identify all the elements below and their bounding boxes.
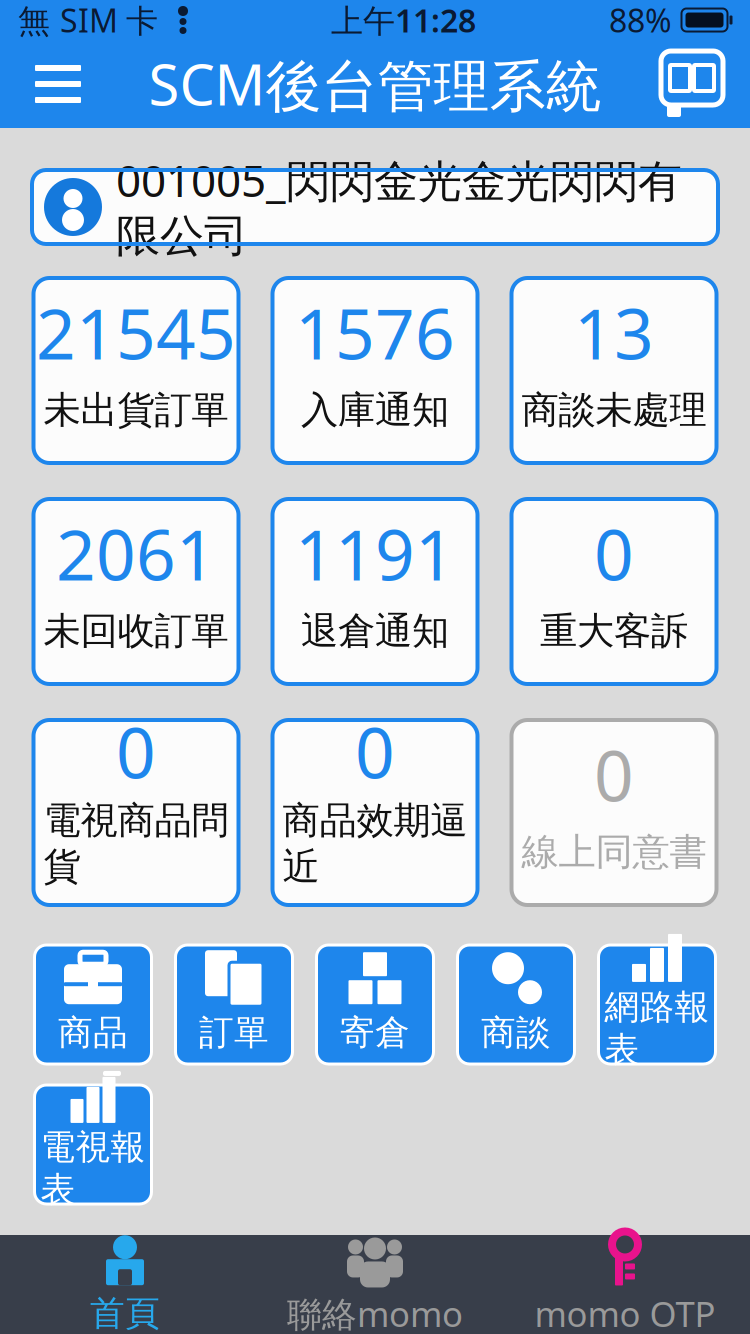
button[interactable]: Menu [12, 41, 104, 127]
staticText: 0 [594, 507, 634, 600]
staticText: 訂單 [199, 1011, 269, 1054]
staticText: 電視商品問貨 [43, 798, 228, 889]
staticText: 商談 [481, 1011, 551, 1054]
button[interactable]: 商品 [34, 945, 151, 1064]
staticText: 聯絡momo [287, 1290, 463, 1334]
button[interactable]: 1576 [272, 278, 477, 463]
button[interactable]: momo OTP [500, 1235, 750, 1334]
button[interactable]: 0 [511, 499, 716, 684]
button[interactable]: 001005_閃閃金光金光閃閃有限公司 [32, 170, 718, 244]
staticText: 線上同意書 [521, 829, 706, 875]
staticText: 重大客訴 [540, 608, 688, 654]
button[interactable]: 聯絡momo [250, 1235, 500, 1334]
staticText: 退倉通知 [301, 608, 449, 654]
button[interactable]: 電視報表 [34, 1085, 151, 1204]
staticText: 商品效期逼近 [282, 798, 467, 889]
staticText: 電視報表 [40, 1126, 145, 1211]
button[interactable]: 首頁 [0, 1235, 250, 1334]
button[interactable]: 2061 [33, 499, 238, 684]
staticText: 商品 [58, 1011, 128, 1054]
staticText: 網路報表 [604, 986, 709, 1071]
staticText: 無 SIM 卡 [18, 0, 158, 41]
staticText: 2061 [56, 507, 216, 600]
button[interactable]: 0 [511, 720, 716, 905]
staticText: 上午11:28 [331, 0, 476, 41]
staticText: 001005_閃閃金光金光閃閃有限公司 [116, 151, 682, 263]
staticText: 寄倉 [340, 1011, 410, 1054]
button[interactable]: 訂單 [175, 945, 292, 1064]
staticText: 未回收訂單 [43, 608, 228, 654]
staticText: 21545 [36, 286, 236, 379]
staticText: 首頁 [90, 1292, 160, 1334]
button[interactable]: 商談 [457, 945, 574, 1064]
staticText: 88% [609, 0, 672, 41]
staticText: 1191 [295, 507, 455, 600]
staticText: 0 [116, 706, 156, 798]
staticText: 0 [355, 706, 395, 798]
staticText: 0 [594, 728, 634, 821]
staticText: momo OTP [534, 1290, 715, 1334]
button[interactable]: 寄倉 [316, 945, 433, 1064]
staticText: 13 [574, 286, 654, 379]
staticText: 1576 [295, 286, 455, 379]
button[interactable]: 13 [511, 278, 716, 463]
button[interactable]: 0 [33, 720, 238, 905]
button[interactable]: 問問 [646, 41, 738, 127]
button[interactable]: 1191 [272, 499, 477, 684]
staticText: 商談未處理 [521, 387, 706, 433]
button[interactable]: 0 [272, 720, 477, 905]
staticText: 入庫通知 [301, 387, 449, 433]
button[interactable]: 網路報表 [598, 945, 715, 1064]
staticText: 未出貨訂單 [43, 387, 228, 433]
staticText: SCM後台管理系統 [148, 47, 601, 121]
button[interactable]: 21545 [33, 278, 238, 463]
